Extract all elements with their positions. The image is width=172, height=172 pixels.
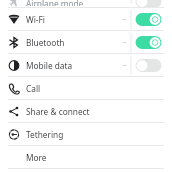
staticText: Call [26,83,41,94]
button[interactable]: Mobile data [0,54,172,77]
staticText: Share & connect [26,106,90,117]
button[interactable]: Tethering [0,123,172,146]
staticText: Airplane mode [26,0,84,6]
button[interactable]: Call [0,77,172,100]
button[interactable]: Share & connect [0,100,172,123]
staticText: Bluetooth [26,37,65,48]
button[interactable]: Bluetooth [0,31,172,54]
staticText: Tethering [26,129,64,140]
button[interactable]: Airplane mode [0,0,172,8]
button[interactable]: Wi-Fi [0,8,172,31]
staticText: More [26,152,47,163]
staticText: Mobile data [26,60,73,71]
staticText: Wi-Fi [26,14,45,25]
button[interactable]: More [0,146,172,169]
